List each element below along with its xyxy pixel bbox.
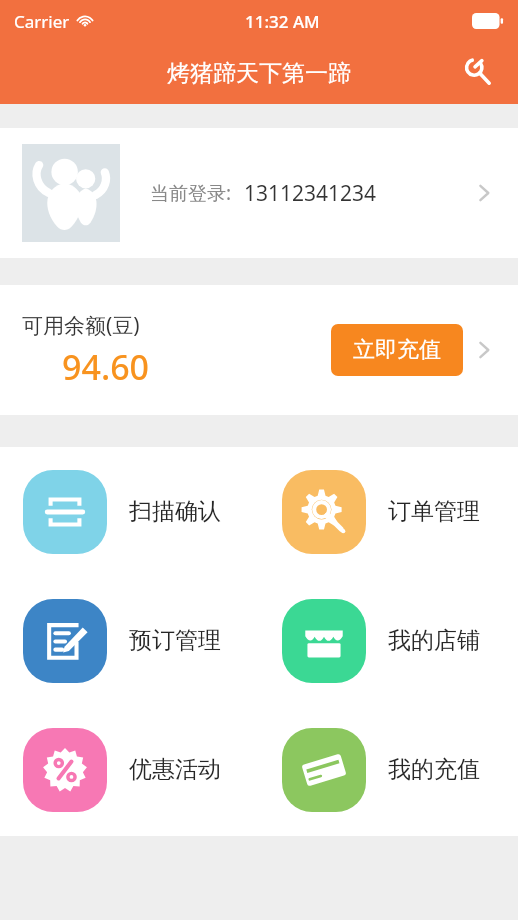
staticText: 当前登录:: [150, 180, 232, 206]
button[interactable]: 扫描确认: [0, 447, 259, 576]
staticText: Carrier: [14, 10, 70, 33]
staticText: 94.60: [62, 344, 150, 390]
button[interactable]: 我的店铺: [259, 576, 518, 705]
button[interactable]: 优惠活动: [0, 705, 259, 834]
staticText: 我的充值: [388, 755, 480, 784]
staticText: 可用余额(豆): [22, 311, 140, 340]
staticText: 预订管理: [129, 626, 221, 655]
staticText: 优惠活动: [129, 755, 221, 784]
button[interactable]: 可用余额(豆): [0, 285, 518, 415]
button[interactable]: 当前登录:: [0, 128, 518, 258]
staticText: 11:32 AM: [245, 10, 320, 33]
button[interactable]: 订单管理: [259, 447, 518, 576]
button[interactable]: Settings: [456, 50, 502, 96]
button[interactable]: 预订管理: [0, 576, 259, 705]
button[interactable]: 立即充值: [331, 324, 463, 376]
staticText: 订单管理: [388, 497, 480, 526]
staticText: 我的店铺: [388, 626, 480, 655]
staticText: 烤猪蹄天下第一蹄: [167, 59, 351, 88]
button[interactable]: 我的充值: [259, 705, 518, 834]
staticText: 立即充值: [353, 336, 441, 364]
staticText: 13112341234: [244, 179, 377, 208]
staticText: 扫描确认: [129, 497, 221, 526]
